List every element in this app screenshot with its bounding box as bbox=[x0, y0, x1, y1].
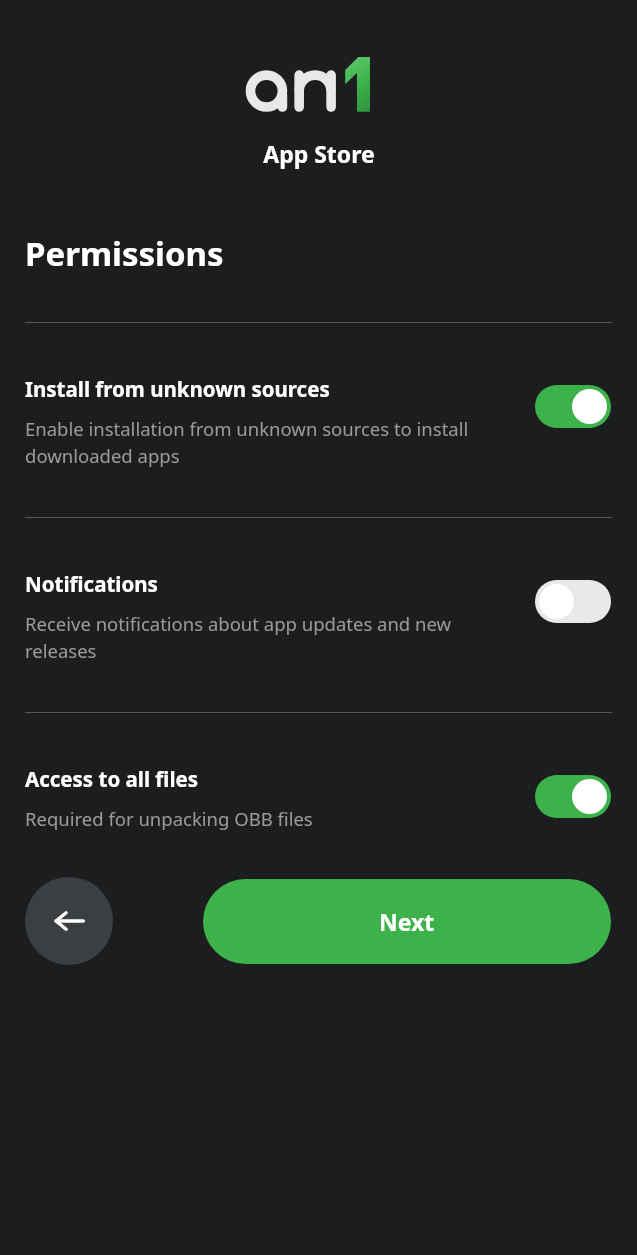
staticText: App Store bbox=[263, 138, 375, 169]
button[interactable]: On bbox=[535, 385, 611, 428]
button[interactable]: Access to all files bbox=[25, 765, 611, 831]
staticText: Receive notifications about app updates … bbox=[25, 611, 521, 664]
staticText: Permissions bbox=[25, 231, 224, 276]
button[interactable]: Notifications bbox=[25, 570, 611, 664]
button[interactable]: Back bbox=[25, 877, 113, 965]
staticText: Notifications bbox=[25, 570, 158, 598]
staticText: Required for unpacking OBB files bbox=[25, 806, 313, 831]
staticText: Access to all files bbox=[25, 765, 199, 793]
button[interactable]: Install from unknown sources bbox=[25, 375, 611, 469]
staticText: Install from unknown sources bbox=[25, 375, 330, 403]
button[interactable]: Off bbox=[535, 580, 611, 623]
staticText: Next bbox=[379, 906, 435, 937]
button[interactable]: On bbox=[535, 775, 611, 818]
staticText: Enable installation from unknown sources… bbox=[25, 416, 521, 469]
button[interactable]: Next bbox=[203, 879, 611, 964]
